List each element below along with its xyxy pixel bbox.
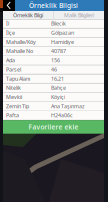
button[interactable]: Malik Bilgileri	[54, 11, 104, 19]
staticText: 16,21	[51, 75, 64, 82]
staticText: Gölpazarı	[51, 29, 74, 36]
staticText: 46	[51, 66, 57, 73]
staticText: Tapu Alanı	[6, 75, 30, 82]
staticText: Köyiçi	[51, 93, 65, 100]
staticText: 40787	[51, 47, 66, 55]
staticText: Favorilere ekle	[28, 122, 78, 131]
staticText: Mahalle No	[6, 47, 33, 55]
staticText: Örneklik Bilgi	[13, 12, 43, 19]
staticText: Mevkii	[6, 93, 22, 100]
staticText: 156	[51, 57, 60, 64]
staticText: Nitelik	[6, 84, 21, 91]
button[interactable]: Back	[3, 0, 15, 11]
staticText: Örneklik Bilgisi	[29, 1, 78, 10]
staticText: Parsel	[6, 66, 21, 73]
staticText: Pafta	[6, 112, 19, 119]
staticText: H24a06c	[51, 112, 73, 119]
button[interactable]: Örneklik Bilgi	[3, 11, 53, 19]
button[interactable]: Favorilere ekle	[3, 120, 104, 134]
staticText: Hamidiye	[51, 38, 74, 45]
staticText: İl	[6, 20, 9, 27]
staticText: Mahalle/Köy	[6, 38, 36, 45]
staticText: Bilecik	[51, 20, 66, 27]
staticText: İlçe	[6, 29, 15, 36]
staticText: Malik Bilgileri	[64, 12, 94, 19]
staticText: Ana Taşınmaz	[51, 103, 85, 110]
staticText: Ada	[6, 57, 15, 64]
staticText: Bahçe	[51, 84, 66, 91]
staticText: Zemin Tip	[6, 103, 29, 110]
